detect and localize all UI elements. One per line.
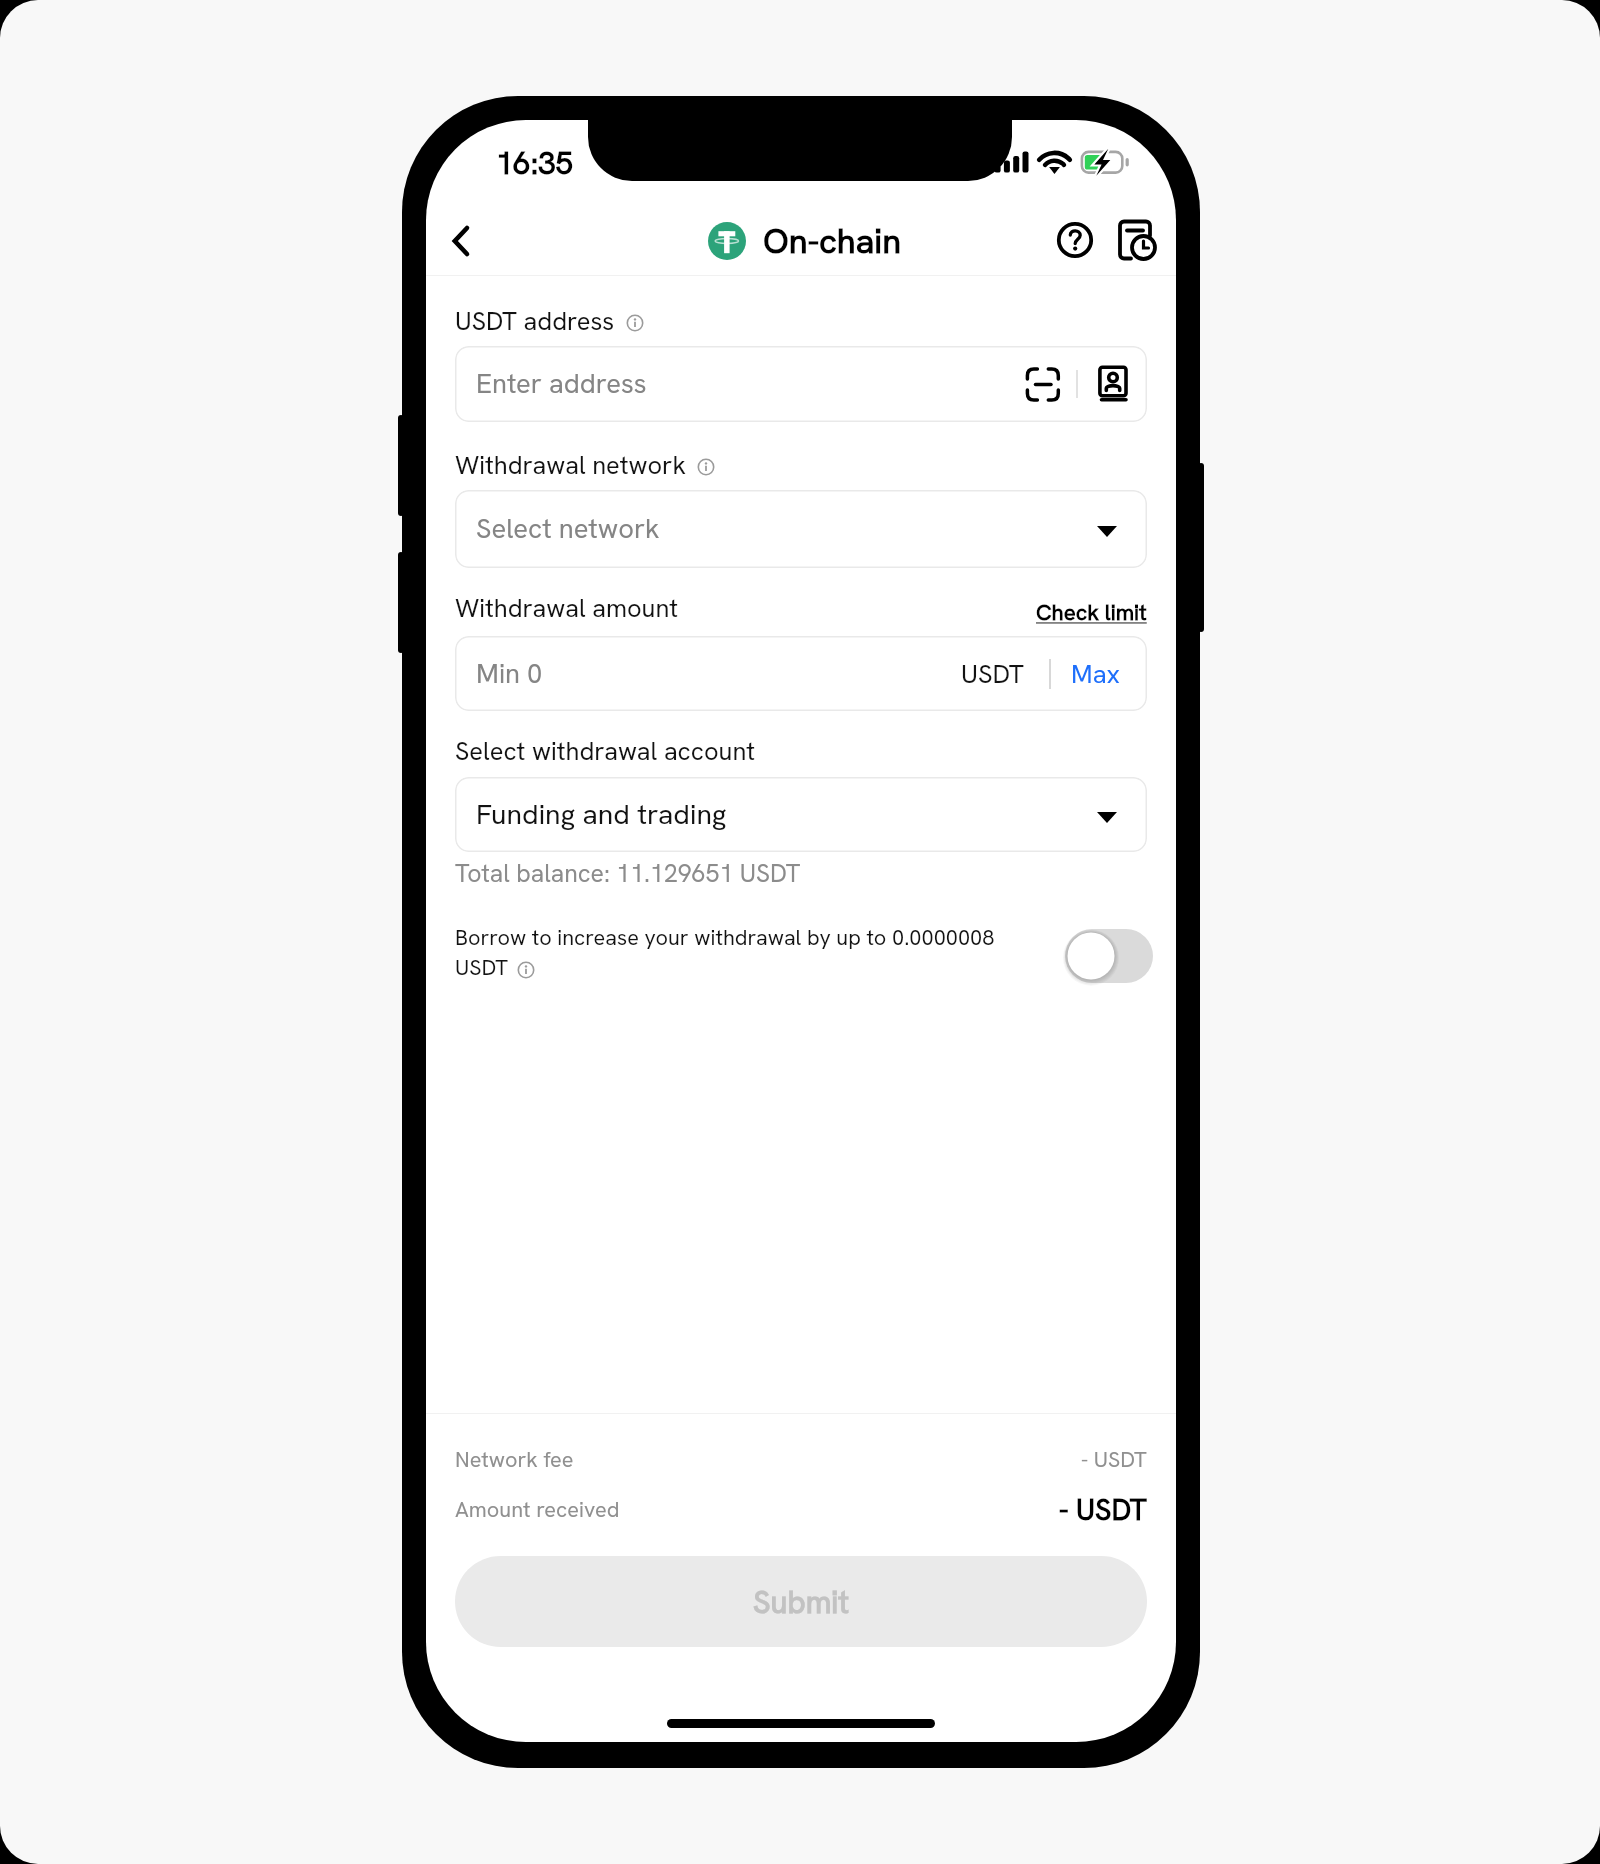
staticText: Borrow to increase your withdrawal by up…	[455, 923, 995, 982]
staticText: Max	[1071, 657, 1120, 691]
staticText: Submit	[753, 1582, 850, 1622]
button[interactable]: Min 0	[455, 636, 1147, 711]
staticText: Withdrawal amount	[455, 592, 679, 625]
staticText: Check limit	[1036, 598, 1147, 627]
button[interactable]: Borrow toggle	[1061, 923, 1157, 989]
button[interactable]: Max	[1071, 657, 1120, 691]
button[interactable]: Address book	[1090, 355, 1142, 413]
staticText: Enter address	[476, 366, 647, 402]
staticText: Withdrawal network	[455, 449, 686, 482]
button[interactable]: Submit	[455, 1556, 1147, 1647]
staticText: Total balance: 11.129651 USDT	[455, 857, 801, 889]
button[interactable]: Scan QR code	[1017, 355, 1069, 413]
staticText: Select network	[476, 511, 660, 547]
staticText: - USDT	[1059, 1491, 1147, 1527]
staticText: Select withdrawal account	[455, 735, 756, 768]
staticText: USDT address	[455, 305, 615, 338]
button[interactable]: Select network	[455, 490, 1147, 568]
staticText: USDT	[961, 657, 1024, 691]
staticText: Amount received	[455, 1495, 620, 1523]
staticText: Funding and trading	[476, 796, 727, 833]
staticText: 16:35	[496, 143, 573, 183]
button[interactable]: Back	[426, 204, 498, 276]
button[interactable]: Help	[1039, 204, 1111, 276]
staticText: Min 0	[476, 656, 543, 692]
staticText: On-chain	[763, 218, 901, 263]
staticText: - USDT	[1081, 1445, 1147, 1473]
button[interactable]: Check limit	[1036, 598, 1147, 627]
staticText: Network fee	[455, 1445, 574, 1473]
button[interactable]: Transaction history	[1100, 204, 1172, 276]
button[interactable]: Enter address	[455, 346, 1147, 422]
button[interactable]: Funding and trading	[455, 777, 1147, 852]
